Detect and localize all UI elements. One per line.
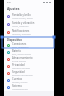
staticText: Pantalla y brillo [12, 13, 31, 17]
staticText: Notificaciones [12, 29, 30, 33]
staticText: Batería [12, 49, 21, 53]
staticText: Conexiones [12, 42, 27, 46]
button[interactable]: Conexiones [4, 42, 54, 49]
staticText: Bloqueo de pantalla [12, 74, 33, 77]
staticText: Tonos, volumen [12, 25, 29, 28]
button[interactable]: Privacidad [4, 63, 54, 70]
staticText: Ajustes [7, 6, 20, 11]
staticText: Historial, burbujas [12, 33, 31, 36]
button[interactable]: Notificaciones [4, 28, 54, 36]
staticText: Seguridad [12, 70, 25, 74]
button[interactable]: Sistema [4, 84, 54, 91]
button[interactable]: Batería [4, 49, 54, 56]
staticText: Sonido y vibración [12, 21, 35, 25]
staticText: Privacidad [12, 63, 25, 67]
staticText: Permisos de apps [12, 67, 31, 70]
button[interactable]: Cuentas [4, 77, 54, 84]
button[interactable]: Pantalla y brillo [4, 12, 54, 20]
staticText: 85%, ahorro activo [12, 53, 32, 56]
staticText: 9:41 [7, 1, 12, 4]
staticText: Google, correo [12, 81, 28, 84]
staticText: Actualizaciones [12, 88, 28, 91]
staticText: 64 GB usados [12, 60, 26, 63]
button[interactable]: Seguridad [4, 70, 54, 77]
staticText: Wi-Fi, Bluetooth [12, 46, 29, 49]
button[interactable]: Almacenamiento [4, 56, 54, 63]
staticText: Sistema [12, 84, 22, 88]
staticText: Cuentas [12, 77, 22, 81]
staticText: Dispositivo [7, 38, 22, 42]
staticText: Modo oscuro, fondo [12, 17, 33, 20]
button[interactable]: Sonido y vibración [4, 20, 54, 28]
staticText: Almacenamiento [12, 56, 33, 60]
